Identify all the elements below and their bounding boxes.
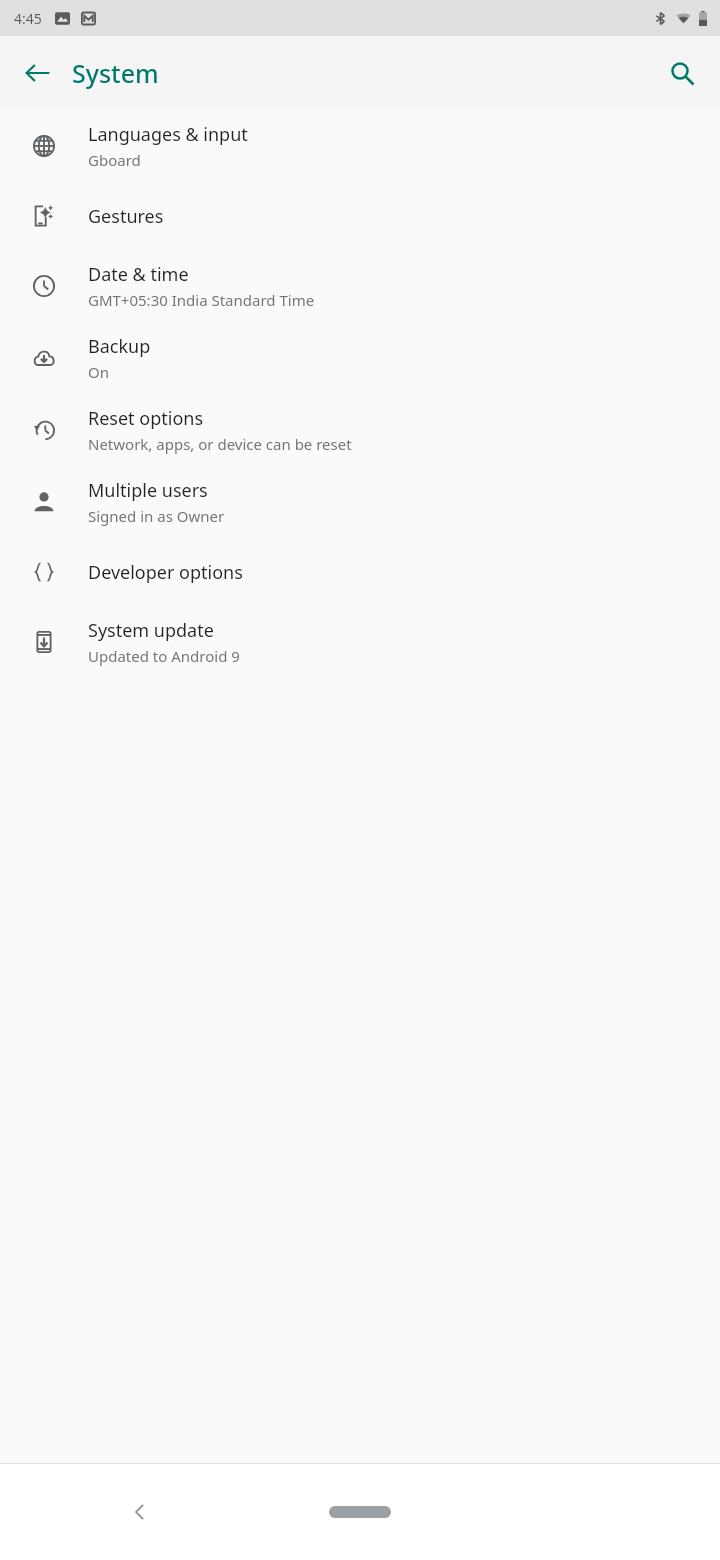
button[interactable]: System update <box>0 606 720 678</box>
button[interactable]: Back <box>10 45 66 101</box>
staticText: 4:45 <box>14 9 42 28</box>
button[interactable]: Developer options <box>0 538 720 606</box>
staticText: Languages & input <box>88 122 248 147</box>
staticText: System update <box>88 618 214 643</box>
staticText: Updated to Android 9 <box>88 646 240 666</box>
button[interactable]: Reset options <box>0 394 720 466</box>
button[interactable]: Multiple users <box>0 466 720 538</box>
button[interactable]: Home <box>329 1506 391 1518</box>
staticText: Developer options <box>88 560 243 585</box>
staticText: Multiple users <box>88 478 208 503</box>
button[interactable]: Backup <box>0 322 720 394</box>
staticText: Gboard <box>88 150 141 170</box>
staticText: Backup <box>88 334 151 359</box>
staticText: Date & time <box>88 262 189 287</box>
staticText: System <box>72 56 159 90</box>
staticText: GMT+05:30 India Standard Time <box>88 290 315 310</box>
staticText: Signed in as Owner <box>88 506 225 526</box>
staticText: Gestures <box>88 204 164 229</box>
staticText: Reset options <box>88 406 204 431</box>
button[interactable]: Languages & input <box>0 110 720 182</box>
staticText: Network, apps, or device can be reset <box>88 434 352 454</box>
button[interactable]: Back <box>112 1484 168 1540</box>
button[interactable]: Search <box>654 45 710 101</box>
button[interactable]: Gestures <box>0 182 720 250</box>
staticText: On <box>88 362 109 382</box>
button[interactable]: Date & time <box>0 250 720 322</box>
